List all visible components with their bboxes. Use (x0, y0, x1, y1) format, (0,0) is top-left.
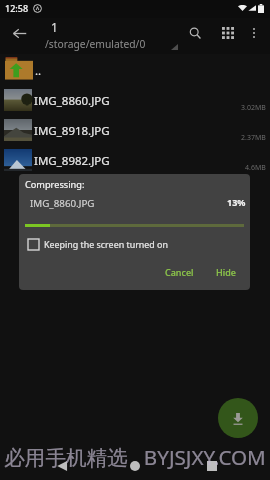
button[interactable]: Back (4, 18, 34, 48)
button[interactable]: IMG_8860.JPG (0, 84, 270, 114)
button[interactable]: Back (48, 452, 76, 480)
button[interactable]: More options (242, 21, 266, 45)
staticText: 4.6MB (245, 163, 266, 173)
button[interactable]: .. (0, 54, 270, 84)
staticText: IMG_8860.JPG (30, 197, 95, 210)
staticText: 13% (227, 196, 246, 208)
button[interactable]: Home (121, 452, 149, 480)
button[interactable]: Hide (211, 262, 241, 282)
button[interactable]: Grid view (215, 20, 241, 46)
button[interactable]: Recent apps (198, 452, 226, 480)
button[interactable]: Keeping the screen turned on (28, 238, 168, 250)
button[interactable]: Search (182, 20, 208, 46)
staticText: 2.37MB (241, 133, 266, 143)
staticText: IMG_8860.JPG (34, 93, 110, 109)
staticText: 1 (51, 19, 58, 35)
button[interactable]: Cancel (160, 262, 199, 282)
staticText: Hide (216, 266, 236, 278)
staticText: 12:58 (5, 2, 29, 14)
staticText: 3.02MB (241, 103, 266, 113)
staticText: /storage/emulated/0 (45, 37, 146, 51)
staticText: Cancel (165, 266, 194, 278)
button[interactable]: IMG_8918.JPG (0, 114, 270, 144)
staticText: IMG_8918.JPG (34, 123, 110, 139)
staticText: Keeping the screen turned on (44, 238, 168, 250)
staticText: IMG_8982.JPG (34, 153, 110, 169)
button[interactable]: IMG_8982.JPG (0, 144, 270, 174)
staticText: 必用手机精选 BYJSJXY.COM (4, 443, 266, 471)
staticText: Compressing: (25, 178, 85, 191)
staticText: .. (35, 63, 42, 79)
button[interactable]: Extract (218, 398, 258, 438)
